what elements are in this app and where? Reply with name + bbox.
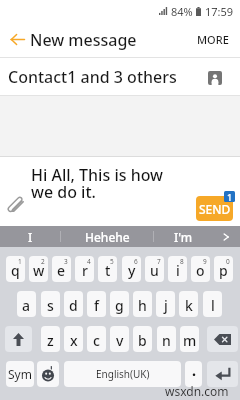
- button[interactable]: English(UK): [64, 361, 181, 387]
- button[interactable]: Add recipients: [206, 69, 224, 87]
- button[interactable]: c: [87, 326, 106, 352]
- staticText: v: [116, 331, 124, 350]
- staticText: w: [33, 261, 45, 280]
- button[interactable]: u: [145, 256, 164, 282]
- button[interactable]: o: [191, 256, 210, 282]
- staticText: 3: [64, 257, 68, 266]
- staticText: 2: [41, 257, 45, 266]
- button[interactable]: k: [179, 291, 198, 317]
- button[interactable]: l: [203, 291, 222, 317]
- staticText: English(UK): [96, 367, 150, 381]
- staticText: 7: [157, 257, 161, 266]
- staticText: z: [47, 331, 54, 350]
- staticText: n: [162, 331, 171, 350]
- staticText: f: [94, 296, 99, 315]
- staticText: m: [183, 331, 197, 350]
- staticText: 1: [18, 257, 22, 266]
- staticText: 8: [180, 257, 184, 266]
- staticText: we do it.: [31, 181, 96, 203]
- staticText: wsxdn.com: [165, 383, 229, 399]
- button[interactable]: Hehehe: [61, 226, 153, 247]
- staticText: Contact1 and 3 others: [8, 66, 177, 88]
- button[interactable]: MORE: [186, 22, 240, 56]
- button[interactable]: More suggestions: [212, 226, 240, 247]
- button[interactable]: y: [122, 256, 141, 282]
- button[interactable]: Shift: [5, 326, 32, 352]
- button[interactable]: x: [64, 326, 83, 352]
- staticText: 5: [110, 257, 114, 266]
- button[interactable]: Backspace: [207, 326, 238, 352]
- staticText: i: [176, 261, 180, 280]
- staticText: p: [219, 261, 228, 280]
- staticText: u: [150, 261, 159, 280]
- staticText: 0: [226, 257, 230, 266]
- staticText: j: [164, 296, 168, 315]
- button[interactable]: j: [156, 291, 175, 317]
- staticText: y: [128, 261, 136, 280]
- staticText: 4: [87, 257, 91, 266]
- button[interactable]: s: [41, 291, 60, 317]
- staticText: b: [138, 331, 147, 350]
- button[interactable]: r: [75, 256, 94, 282]
- staticText: I: [28, 229, 33, 245]
- button[interactable]: Enter: [207, 361, 238, 387]
- button[interactable]: SEND: [196, 196, 233, 221]
- button[interactable]: Attach file: [4, 193, 26, 215]
- button[interactable]: p: [214, 256, 233, 282]
- staticText: x: [70, 331, 78, 350]
- staticText: t: [105, 261, 111, 280]
- button[interactable]: z: [41, 326, 60, 352]
- staticText: Hehehe: [85, 229, 130, 245]
- button[interactable]: g: [110, 291, 129, 317]
- button[interactable]: b: [133, 326, 152, 352]
- button[interactable]: w: [29, 256, 48, 282]
- staticText: a: [22, 296, 31, 315]
- staticText: I'm: [174, 229, 193, 245]
- staticText: r: [82, 261, 88, 280]
- staticText: g: [115, 296, 124, 315]
- staticText: d: [69, 296, 78, 315]
- button[interactable]: n: [157, 326, 176, 352]
- button[interactable]: I'm: [154, 226, 212, 247]
- staticText: c: [93, 331, 100, 350]
- staticText: o: [196, 261, 205, 280]
- button[interactable]: v: [110, 326, 129, 352]
- staticText: 84%: [171, 4, 193, 19]
- staticText: SEND: [199, 201, 231, 217]
- staticText: 6: [134, 257, 138, 266]
- staticText: s: [47, 296, 54, 315]
- staticText: 9: [203, 257, 207, 266]
- button[interactable]: q: [6, 256, 25, 282]
- button[interactable]: t: [98, 256, 117, 282]
- staticText: h: [138, 296, 147, 315]
- button[interactable]: Back: [0, 22, 34, 56]
- button[interactable]: a: [17, 291, 36, 317]
- staticText: Hi All, This is how: [31, 164, 164, 186]
- button[interactable]: i: [168, 256, 187, 282]
- button[interactable]: f: [87, 291, 106, 317]
- button[interactable]: Period: [185, 361, 202, 387]
- button[interactable]: d: [64, 291, 83, 317]
- staticText: l: [211, 296, 215, 315]
- staticText: MORE: [197, 32, 229, 47]
- button[interactable]: Sym: [6, 361, 34, 387]
- button[interactable]: Contact1 and 3 others: [0, 58, 240, 95]
- staticText: k: [185, 296, 193, 315]
- button[interactable]: e: [52, 256, 71, 282]
- button[interactable]: m: [180, 326, 199, 352]
- button[interactable]: I: [0, 226, 60, 247]
- staticText: 1: [227, 191, 233, 202]
- button[interactable]: h: [133, 291, 152, 317]
- staticText: 17:59: [205, 4, 234, 19]
- staticText: q: [11, 261, 20, 280]
- staticText: e: [57, 261, 66, 280]
- staticText: Sym: [8, 366, 32, 382]
- button[interactable]: Emoji: [37, 361, 59, 387]
- staticText: New message: [30, 29, 137, 51]
